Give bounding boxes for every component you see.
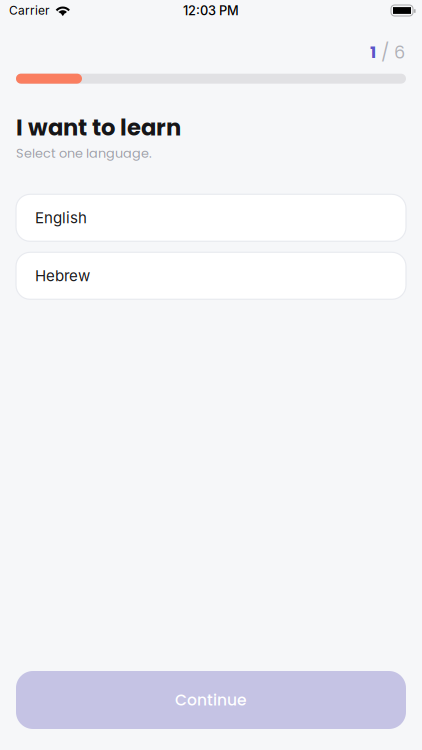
staticText: I want to learn	[16, 112, 181, 143]
button[interactable]: Hebrew	[16, 252, 406, 299]
staticText: English	[35, 209, 87, 227]
button[interactable]: Continue	[16, 671, 406, 729]
staticText: 1	[370, 41, 376, 64]
staticText: Continue	[175, 689, 247, 711]
staticText: 12:03 PM	[183, 3, 239, 18]
staticText: 6	[394, 40, 405, 65]
staticText: Hebrew	[35, 267, 90, 285]
staticText: /	[376, 40, 394, 65]
button[interactable]: English	[16, 194, 406, 241]
staticText: Carrier	[9, 3, 50, 18]
staticText: Select one language.	[16, 144, 152, 162]
